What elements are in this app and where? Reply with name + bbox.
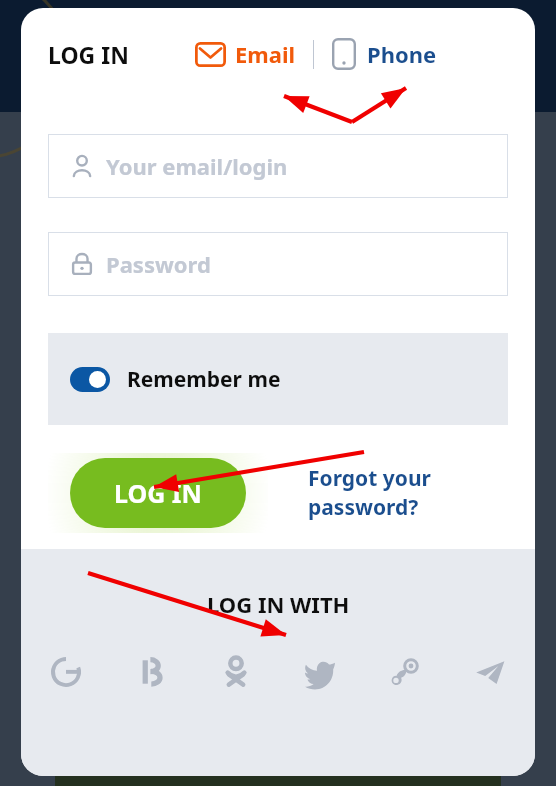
staticText: Forgot your password?	[308, 464, 531, 522]
staticText: LOG IN WITH	[207, 589, 350, 619]
button[interactable]: Steam	[380, 647, 430, 697]
staticText: LOG IN	[114, 476, 202, 510]
button[interactable]: Twitter	[295, 647, 345, 697]
button[interactable]: Password	[48, 232, 508, 296]
staticText: Email	[235, 39, 296, 69]
staticText: Password	[106, 249, 211, 279]
button[interactable]: Odnoklassniki	[211, 647, 261, 697]
staticText: Phone	[367, 39, 437, 69]
button[interactable]: Your email/login	[48, 134, 508, 198]
button[interactable]: Remember me	[48, 333, 508, 425]
button[interactable]: Forgot your password?	[304, 460, 535, 526]
button[interactable]: LOG IN	[70, 458, 246, 528]
button[interactable]: Phone	[328, 34, 441, 74]
staticText: Remember me	[127, 365, 281, 394]
button[interactable]: Telegram	[465, 647, 515, 697]
button[interactable]: Email	[191, 35, 300, 73]
button[interactable]: VK	[126, 647, 176, 697]
staticText: LOG IN	[48, 39, 129, 70]
button[interactable]: Google	[41, 647, 91, 697]
staticText: Your email/login	[106, 151, 288, 181]
